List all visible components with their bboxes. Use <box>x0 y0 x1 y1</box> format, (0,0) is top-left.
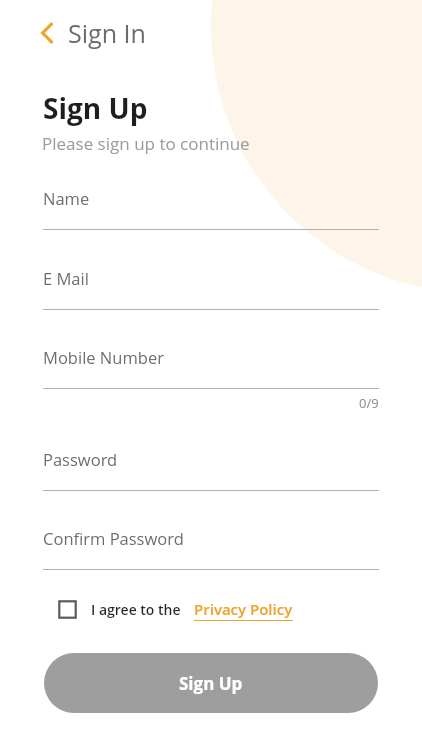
staticText: Confirm Password <box>43 527 184 549</box>
button[interactable]: Back to Sign In <box>33 9 154 57</box>
staticText: I agree to the <box>91 600 181 619</box>
staticText: Password <box>43 448 118 470</box>
button[interactable]: I agree to the terms, checkbox <box>54 596 80 622</box>
button[interactable]: Password <box>43 444 379 491</box>
button[interactable]: Privacy Policy <box>194 599 293 619</box>
staticText: Privacy Policy <box>194 599 293 619</box>
staticText: Sign Up <box>43 89 148 127</box>
staticText: Name <box>43 187 90 209</box>
staticText: E Mail <box>43 267 89 289</box>
staticText: Sign Up <box>179 672 243 695</box>
staticText: Mobile Number <box>43 346 164 368</box>
button[interactable]: Confirm Password <box>43 523 379 570</box>
button[interactable]: Mobile Number <box>43 342 379 389</box>
button[interactable]: Name <box>43 183 379 230</box>
button[interactable]: Sign Up <box>44 653 378 713</box>
staticText: Sign In <box>68 16 146 50</box>
staticText: Please sign up to continue <box>42 132 250 155</box>
staticText: 0/9 <box>359 394 379 412</box>
button[interactable]: E Mail <box>43 263 379 310</box>
